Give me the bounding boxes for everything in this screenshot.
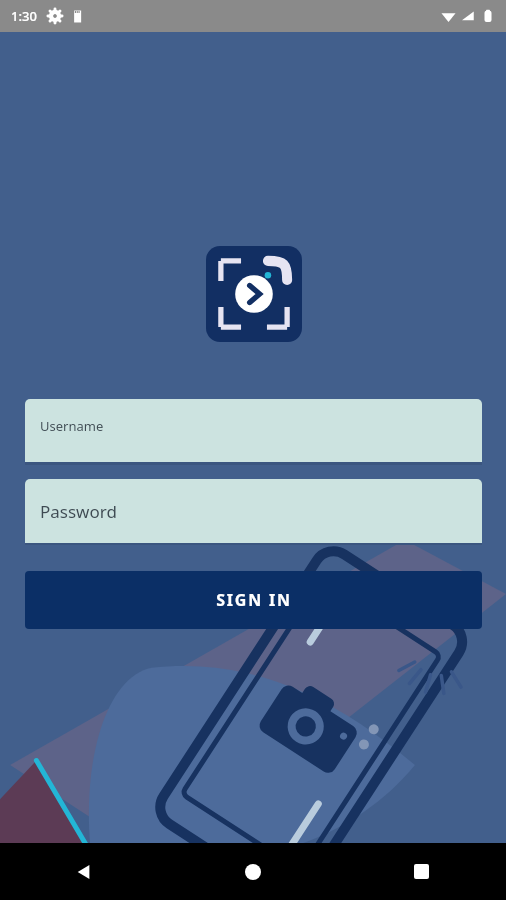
button[interactable]: Back xyxy=(0,843,168,900)
button[interactable]: Recents xyxy=(337,843,506,900)
staticText: SIGN IN xyxy=(216,589,292,611)
button[interactable]: Username xyxy=(25,399,482,462)
button[interactable]: Home xyxy=(168,843,337,900)
staticText: 1:30 xyxy=(11,7,37,25)
staticText: Username xyxy=(40,417,104,435)
staticText: Password xyxy=(40,500,117,523)
button[interactable]: SIGN IN xyxy=(25,571,482,629)
button[interactable]: Password xyxy=(25,479,482,543)
